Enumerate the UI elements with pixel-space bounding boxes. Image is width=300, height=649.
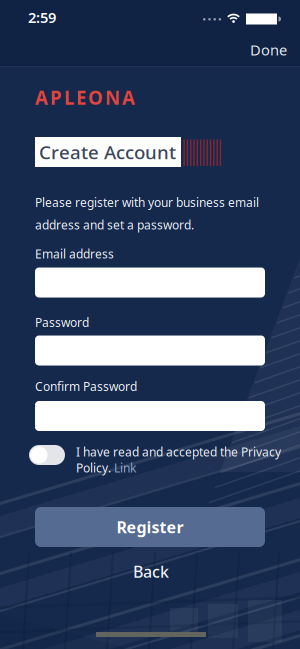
button[interactable]: Back [133, 561, 169, 582]
staticText: Link [114, 460, 136, 476]
staticText: 2:59 [28, 7, 56, 27]
button[interactable]: Email address [35, 267, 265, 297]
staticText: I have read and accepted the Privacy [76, 444, 281, 460]
button[interactable]: Link [114, 460, 136, 476]
staticText: Please register with your business email… [35, 194, 259, 233]
staticText: Create Account [39, 140, 176, 164]
staticText: Confirm Password [35, 378, 137, 394]
button[interactable]: Password [35, 335, 265, 365]
staticText: Done [250, 40, 287, 59]
button[interactable]: Done [250, 40, 287, 59]
staticText: Password [35, 314, 89, 330]
staticText: Policy. [76, 460, 114, 476]
staticText: Back [133, 561, 169, 582]
staticText: A P L E O N A [35, 85, 135, 110]
button[interactable]: Confirm Password [35, 401, 265, 431]
staticText: Register [116, 516, 183, 538]
button[interactable]: Accept privacy policy [29, 445, 65, 465]
staticText: Email address [35, 246, 114, 262]
button[interactable]: Register [35, 507, 265, 547]
